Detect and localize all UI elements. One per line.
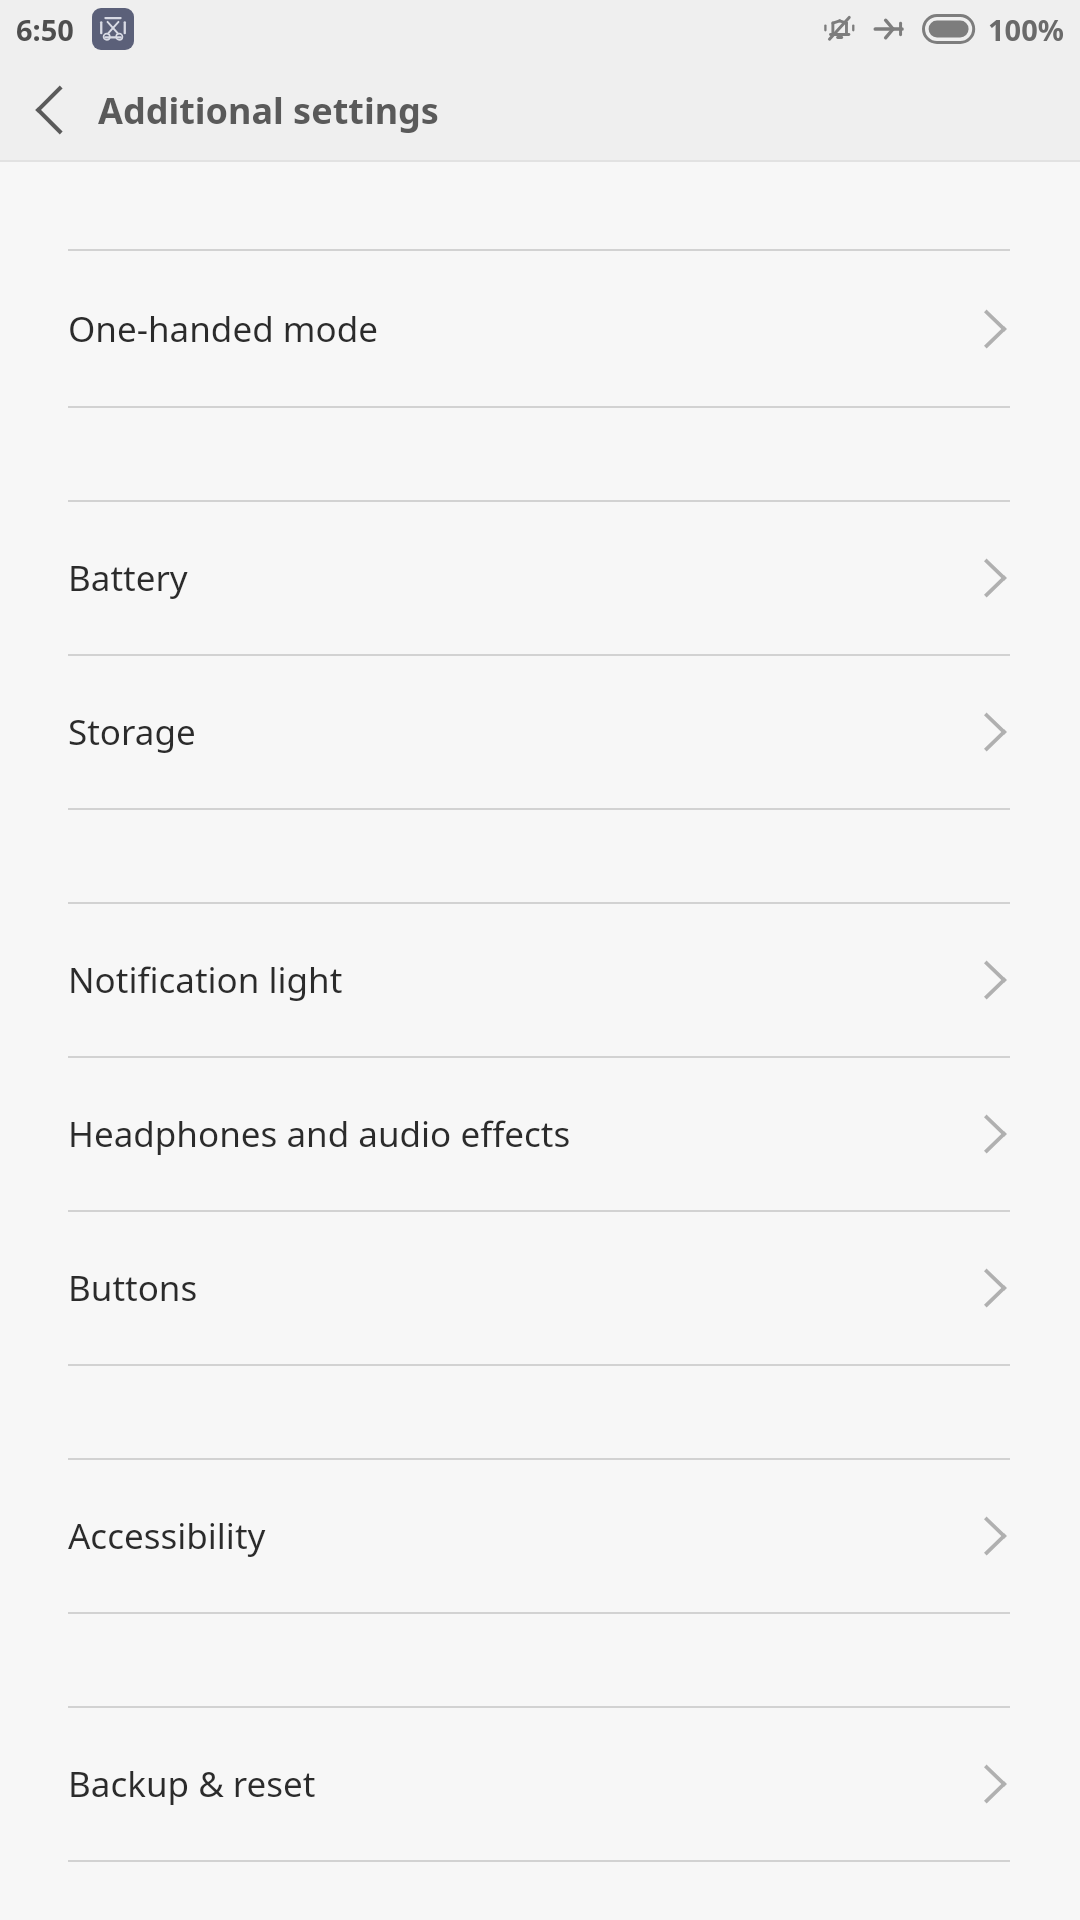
staticText: Battery	[68, 554, 188, 602]
button[interactable]: Back	[0, 58, 98, 162]
button[interactable]: One-handed mode	[0, 251, 1080, 406]
staticText: Accessibility	[68, 1512, 266, 1560]
staticText: One-handed mode	[68, 305, 378, 353]
staticText: Storage	[68, 708, 196, 756]
button[interactable]: Buttons	[0, 1212, 1080, 1364]
button[interactable]: Battery	[0, 502, 1080, 654]
button[interactable]: Backup & reset	[0, 1708, 1080, 1860]
staticText: 6:50	[16, 10, 74, 49]
button[interactable]: Notification light	[0, 904, 1080, 1056]
other: Screenshot	[92, 8, 134, 50]
staticText: Headphones and audio effects	[68, 1110, 571, 1158]
staticText: 100%	[988, 10, 1064, 49]
button[interactable]: Accessibility	[0, 1460, 1080, 1612]
button[interactable]: Headphones and audio effects	[0, 1058, 1080, 1210]
staticText: Backup & reset	[68, 1760, 316, 1808]
button[interactable]: Storage	[0, 656, 1080, 808]
staticText: Notification light	[68, 956, 343, 1004]
staticText: Additional settings	[98, 86, 439, 135]
staticText: Buttons	[68, 1264, 198, 1312]
